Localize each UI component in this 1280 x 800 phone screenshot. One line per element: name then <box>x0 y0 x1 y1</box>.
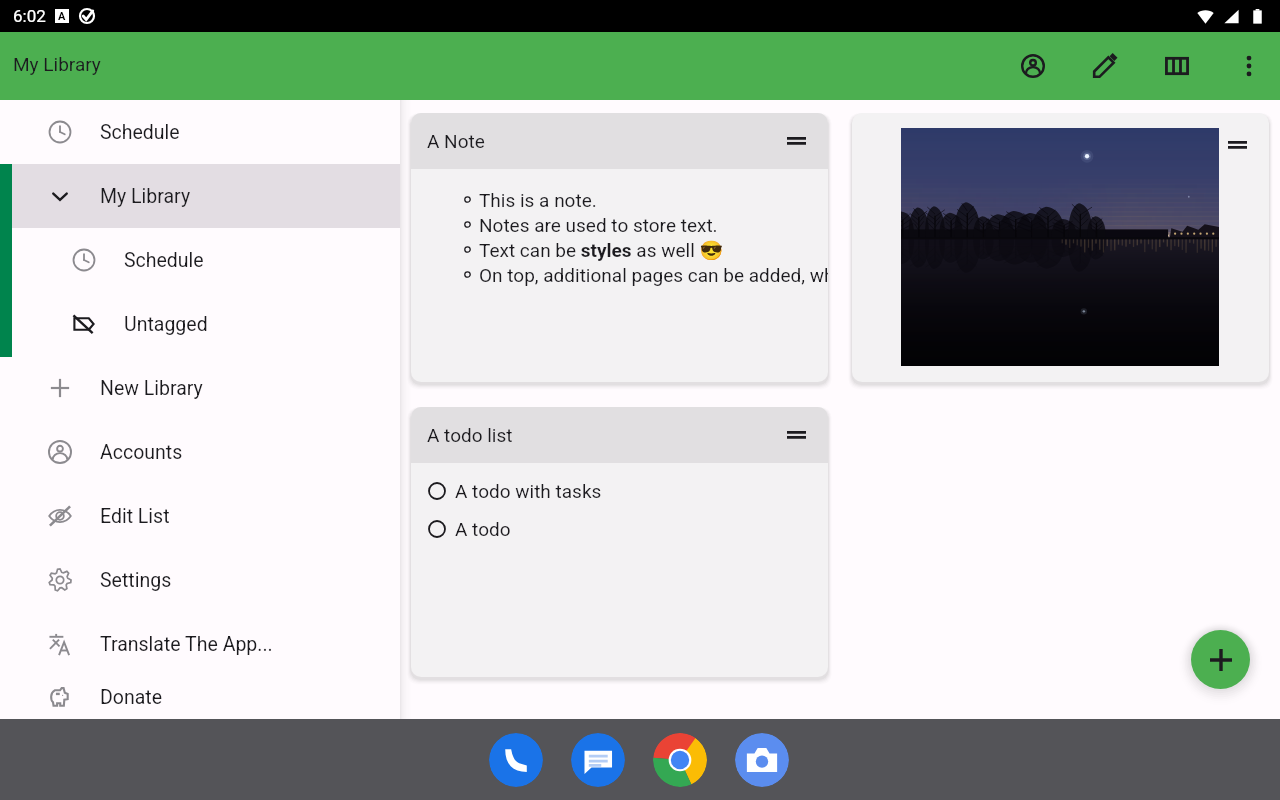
button[interactable]: Messages <box>571 733 625 787</box>
staticText: 6:02 <box>13 6 46 26</box>
button[interactable]: Edit List <box>0 484 400 548</box>
button[interactable]: Drag handle <box>781 420 811 450</box>
staticText: A <box>58 10 66 23</box>
staticText: Edit List <box>100 505 170 528</box>
button[interactable]: A todo list <box>411 407 828 677</box>
staticText: New Library <box>100 377 203 400</box>
staticText: Donate <box>100 686 163 709</box>
button[interactable]: Donate <box>0 676 400 719</box>
staticText: On top, additional pages can be added, w… <box>479 264 828 286</box>
button[interactable]: Untagged <box>0 292 400 356</box>
staticText: A todo <box>455 518 511 540</box>
button[interactable]: Drag handle <box>781 126 811 156</box>
staticText: This is a note. <box>479 189 597 211</box>
staticText: Accounts <box>100 441 183 464</box>
button[interactable]: A todo <box>428 510 828 548</box>
staticText: Schedule <box>124 249 204 272</box>
button[interactable]: My Library <box>0 164 400 228</box>
button[interactable]: Columns <box>1141 32 1213 100</box>
staticText: Notes are used to store text. <box>479 214 718 236</box>
button[interactable]: New Library <box>0 356 400 420</box>
button[interactable]: Edit <box>1069 32 1141 100</box>
button[interactable]: Schedule <box>0 228 400 292</box>
button[interactable]: Phone <box>489 733 543 787</box>
staticText: Schedule <box>100 121 180 144</box>
button[interactable]: A todo with tasks <box>428 472 828 510</box>
staticText: Settings <box>100 569 172 592</box>
button[interactable]: Add <box>1191 630 1250 689</box>
staticText: Untagged <box>124 313 208 336</box>
button[interactable]: Account <box>997 32 1069 100</box>
button[interactable]: Translate The App... <box>0 612 400 676</box>
button[interactable]: Chrome <box>653 733 707 787</box>
button[interactable]: A Note <box>411 113 828 382</box>
staticText: Text can be styles as well 😎 <box>479 239 724 261</box>
staticText: Translate The App... <box>100 633 273 656</box>
button[interactable]: Schedule <box>0 100 400 164</box>
staticText: A todo list <box>427 424 513 446</box>
button[interactable]: Drag handle <box>1222 130 1252 160</box>
staticText: My Library <box>13 53 101 75</box>
staticText: A Note <box>427 130 485 152</box>
button[interactable]: Accounts <box>0 420 400 484</box>
button[interactable]: Drag handle <box>852 113 1269 382</box>
button[interactable]: More options <box>1213 32 1280 100</box>
staticText: A todo with tasks <box>455 480 602 502</box>
staticText: My Library <box>100 185 191 208</box>
button[interactable]: Settings <box>0 548 400 612</box>
button[interactable]: Camera <box>735 733 789 787</box>
